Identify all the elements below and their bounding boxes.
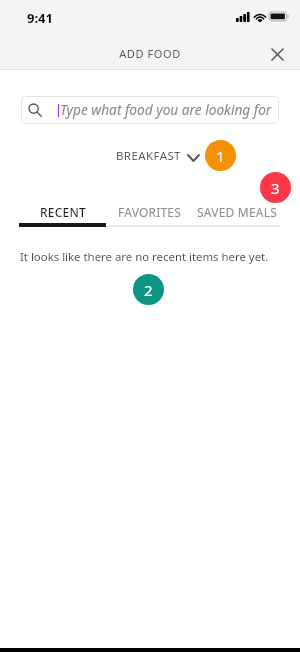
staticText: SAVED MEALS <box>197 204 277 220</box>
staticText: 3 <box>271 178 280 198</box>
staticText: Type what food you are looking for <box>60 100 272 119</box>
button[interactable]: Select meal: BREAKFAST <box>116 148 200 164</box>
staticText: 2 <box>144 280 153 300</box>
button[interactable]: 2 <box>133 274 164 305</box>
staticText: RECENT <box>40 204 86 220</box>
staticText: It looks like there are no recent items … <box>20 249 269 265</box>
button[interactable]: 3 <box>260 172 291 203</box>
button[interactable]: RECENT <box>19 203 106 227</box>
staticText: BREAKFAST <box>116 148 181 164</box>
button[interactable]: 1 <box>205 140 236 171</box>
staticText: 9:41 <box>27 9 53 27</box>
staticText: ADD FOOD <box>0 46 300 61</box>
button[interactable]: Close <box>264 41 290 67</box>
staticText: 1 <box>216 146 225 166</box>
button[interactable]: SAVED MEALS <box>193 203 280 227</box>
button[interactable]: Search food <box>21 96 279 124</box>
button[interactable]: FAVORITES <box>106 203 193 227</box>
staticText: FAVORITES <box>118 204 181 220</box>
